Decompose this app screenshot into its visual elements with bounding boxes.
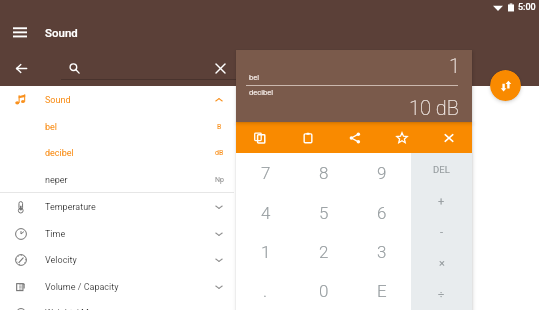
button[interactable]: Back [9,56,33,80]
staticText: . [263,281,268,301]
button[interactable]: 7 [236,153,295,193]
staticText: Sound [45,26,78,39]
button[interactable]: 4 [236,193,295,232]
button[interactable]: 5 [295,193,353,232]
button[interactable]: Clear [425,122,472,153]
staticText: decibel [45,148,74,159]
staticText: B [217,123,222,131]
staticText: 4 [261,203,271,223]
button[interactable]: 2 [295,232,353,271]
button[interactable]: 6 [353,193,411,232]
button[interactable]: decibel [0,139,234,166]
button[interactable]: Time [0,220,234,247]
staticText: 1 [449,54,460,77]
button[interactable]: Search [62,56,86,80]
staticText: 9 [377,163,387,183]
staticText: 7 [261,163,271,183]
staticText: 2 [319,242,329,262]
staticText: Volume / Capacity [45,282,119,293]
button[interactable]: Favorite [378,122,425,153]
staticText: - [440,226,444,239]
button[interactable]: Weight / Mass [0,299,234,310]
button[interactable]: 9 [353,153,411,193]
staticText: 3 [377,242,387,262]
staticText: 6 [377,203,387,223]
staticText: Temperature [45,202,96,213]
staticText: Np [215,176,224,184]
button[interactable]: 0 [295,271,353,310]
button[interactable]: + [411,185,472,217]
staticText: 8 [319,163,329,183]
staticText: Sound [45,95,71,106]
button[interactable]: Open navigation drawer [6,18,34,46]
staticText: decibel [249,88,273,97]
staticText: E [377,281,387,301]
button[interactable]: bel [0,113,234,140]
button[interactable]: Sound [0,86,234,113]
staticText: 0 [319,281,329,301]
button[interactable]: 1 [236,232,295,271]
staticText: neper [45,175,68,186]
button[interactable]: Paste [284,122,331,153]
staticText: Weight / Mass [45,308,103,310]
staticText: dB [215,149,224,157]
staticText: Time [45,229,66,240]
button[interactable]: ÷ [411,279,472,310]
staticText: 5 [319,203,329,223]
staticText: 10 dB [409,96,459,119]
staticText: bel [249,73,260,82]
staticText: × [439,257,445,270]
staticText: ÷ [438,288,445,301]
button[interactable]: Volume / Capacity [0,273,234,300]
button[interactable]: × [411,248,472,279]
staticText: 5:00 [518,2,536,13]
button[interactable]: E [353,271,411,310]
staticText: + [438,195,445,208]
button[interactable]: 3 [353,232,411,271]
staticText: 1 [261,242,271,262]
staticText: Velocity [45,255,77,266]
button[interactable]: Temperature [0,193,234,220]
staticText: DEL [433,164,450,175]
button[interactable]: Copy [236,122,284,153]
button[interactable]: Clear search [208,56,232,80]
button[interactable]: neper [0,166,234,193]
button[interactable]: DEL [411,153,472,185]
button[interactable]: Velocity [0,246,234,273]
button[interactable]: Share [331,122,378,153]
button[interactable]: Swap units [490,70,521,101]
staticText: bel [45,122,58,133]
button[interactable]: 8 [295,153,353,193]
